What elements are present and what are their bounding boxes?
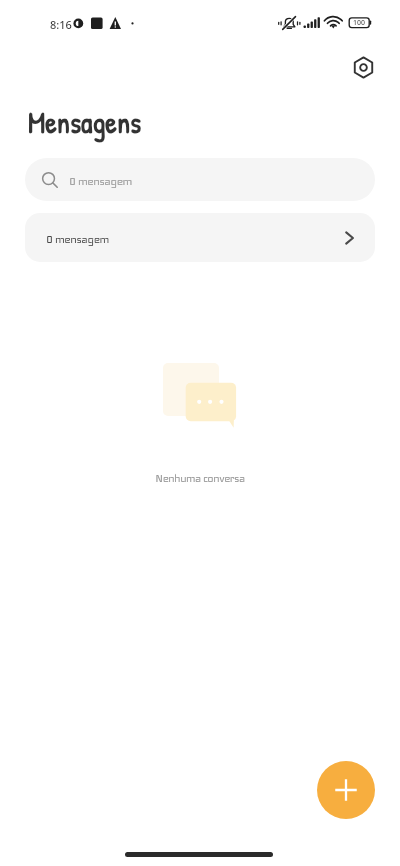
button[interactable]: 0 mensagem: [25, 158, 375, 201]
staticText: 8:16: [50, 17, 72, 32]
button[interactable]: Settings: [347, 51, 379, 83]
staticText: 100: [353, 18, 366, 28]
staticText: Mensagens: [28, 103, 142, 142]
staticText: Nenhuma conversa: [0, 472, 400, 485]
staticText: 0 mensagem: [46, 233, 109, 246]
button[interactable]: New message: [317, 761, 375, 819]
staticText: 0 mensagem: [69, 175, 132, 188]
button[interactable]: 0 mensagem: [25, 213, 375, 262]
